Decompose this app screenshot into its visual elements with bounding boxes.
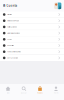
button[interactable]: Pedidos xyxy=(32,86,48,94)
button[interactable]: Cerrar Sesion xyxy=(0,55,64,61)
button[interactable]: Perfil xyxy=(48,86,64,94)
button[interactable]: Inicio xyxy=(0,86,16,94)
staticText: Favoritos xyxy=(7,45,14,46)
button[interactable]: Metodos de Pago xyxy=(0,18,64,24)
button[interactable]: Historial de Pedidos xyxy=(0,30,64,36)
staticText: Cerrar Sesion xyxy=(7,57,18,59)
button[interactable]: Te Recomendamos xyxy=(0,49,64,55)
staticText: Te Recomendamos xyxy=(7,51,21,53)
staticText: Ajustes xyxy=(7,14,12,15)
staticText: Puntos xyxy=(7,38,12,40)
button[interactable]: Profile photo xyxy=(54,2,61,9)
staticText: Mi Cuenta xyxy=(3,4,18,7)
staticText: Inicio xyxy=(6,92,9,94)
staticText: Historial de Pedidos xyxy=(7,32,20,34)
button[interactable]: Ajustes xyxy=(0,12,64,17)
staticText: Pedidos xyxy=(37,92,43,94)
button[interactable]: Favoritos xyxy=(0,43,64,48)
staticText: Metodos de Pago xyxy=(7,20,19,22)
staticText: Notificaciones xyxy=(7,26,17,28)
button[interactable]: Buscar xyxy=(16,86,32,94)
button[interactable]: Puntos xyxy=(0,36,64,42)
button[interactable]: Notificaciones xyxy=(0,24,64,30)
